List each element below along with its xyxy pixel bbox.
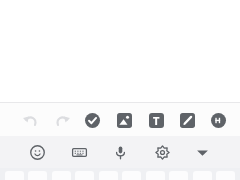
button[interactable]: Add text bbox=[143, 107, 169, 133]
button[interactable]: Done bbox=[79, 107, 105, 133]
button[interactable]: Collapse bbox=[189, 139, 215, 165]
button[interactable]: Draw bbox=[174, 107, 200, 133]
button[interactable]: Undo bbox=[17, 107, 43, 133]
button[interactable]: Keyboard bbox=[66, 139, 92, 165]
button[interactable]: HD quality bbox=[205, 107, 231, 133]
button[interactable]: Voice input bbox=[107, 139, 133, 165]
button[interactable]: Emoji bbox=[24, 139, 50, 165]
button[interactable]: Insert image bbox=[111, 107, 137, 133]
button[interactable]: Redo bbox=[49, 107, 75, 133]
button[interactable]: Settings bbox=[149, 139, 175, 165]
staticText: T bbox=[153, 113, 160, 128]
